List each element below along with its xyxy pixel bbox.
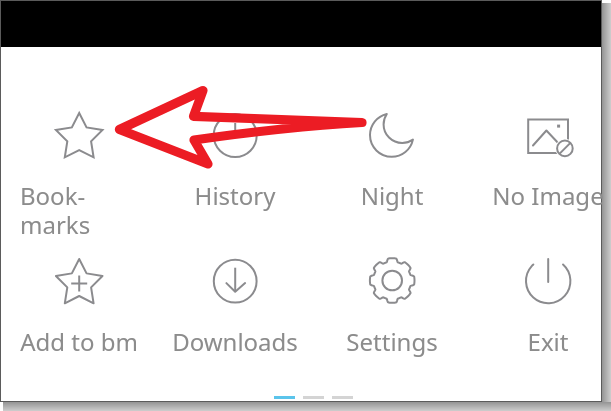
button[interactable]: Add to bm [1,236,157,383]
staticText: Settings [314,325,470,358]
staticText: No Image [470,179,611,212]
button[interactable]: No Image [470,88,611,235]
staticText: Book- marks [20,179,140,241]
staticText: Downloads [157,325,313,358]
button[interactable]: Night [314,88,470,235]
button[interactable]: History [157,88,313,235]
staticText: Exit [470,325,611,358]
staticText: Add to bm [1,325,157,358]
staticText: History [157,179,313,212]
button[interactable]: Bookmarks [1,88,157,235]
staticText: Night [314,179,470,212]
button[interactable]: Downloads [157,236,313,383]
button[interactable]: Exit [470,236,611,383]
button[interactable]: Settings [314,236,470,383]
